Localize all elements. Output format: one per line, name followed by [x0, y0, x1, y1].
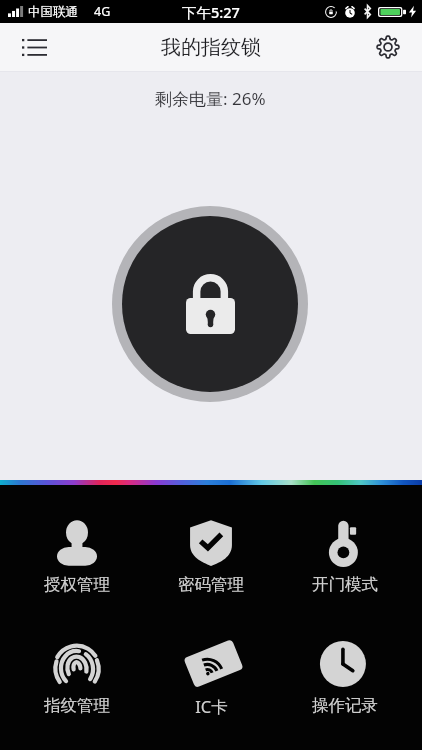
button[interactable]: Lock	[112, 206, 308, 402]
staticText: 授权管理	[44, 574, 110, 594]
button[interactable]: 密码管理	[144, 520, 278, 594]
staticText: 下午5:27	[182, 2, 240, 22]
staticText: 操作记录	[312, 695, 378, 715]
staticText: IC卡	[195, 695, 228, 715]
staticText: 中国联通	[28, 4, 78, 20]
staticText: 4G	[94, 3, 111, 20]
button[interactable]: 操作记录	[278, 641, 412, 715]
button[interactable]: Settings	[366, 25, 410, 69]
staticText: 开门模式	[312, 574, 378, 594]
button[interactable]: 指纹管理	[10, 641, 144, 715]
staticText: 密码管理	[178, 574, 244, 594]
button[interactable]: 开门模式	[278, 520, 412, 594]
staticText: 我的指纹锁	[161, 35, 261, 60]
button[interactable]: IC卡	[144, 641, 278, 715]
button[interactable]: Menu	[12, 25, 56, 69]
staticText: 指纹管理	[44, 695, 110, 715]
button[interactable]: 授权管理	[10, 520, 144, 594]
staticText: 剩余电量: 26%	[155, 87, 266, 110]
